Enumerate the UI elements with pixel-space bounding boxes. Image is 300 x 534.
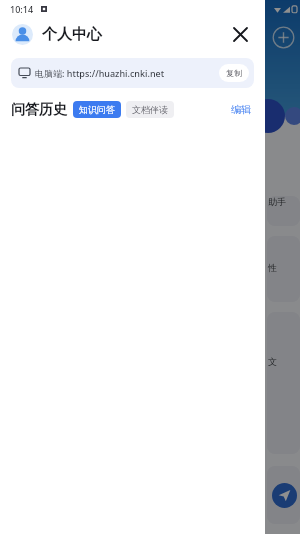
staticText: 10:14 [10,3,34,15]
button[interactable]: Send [272,483,297,508]
staticText: 电脑端: https://huazhi.cnki.net [35,67,165,79]
staticText: 文档伴读 [132,104,168,115]
staticText: 复制 [226,68,242,78]
button[interactable]: New conversation [272,26,295,49]
staticText: 问答历史 [11,101,67,119]
button[interactable]: Profile avatar [12,24,33,45]
button[interactable]: 复制 [219,64,249,82]
staticText: 知识问答 [79,104,115,115]
button[interactable]: 知识问答 [73,101,121,118]
staticText: 助手 [268,196,286,207]
button[interactable]: Close [227,21,253,47]
button[interactable]: 编辑 [228,100,254,119]
button[interactable]: 文档伴读 [126,101,174,118]
staticText: 编辑 [231,103,251,116]
button[interactable]: 电脑端: https://huazhi.cnki.net [11,58,254,88]
staticText: 个人中心 [42,25,102,44]
staticText: 文 [268,356,277,367]
staticText: 性 [268,262,277,273]
